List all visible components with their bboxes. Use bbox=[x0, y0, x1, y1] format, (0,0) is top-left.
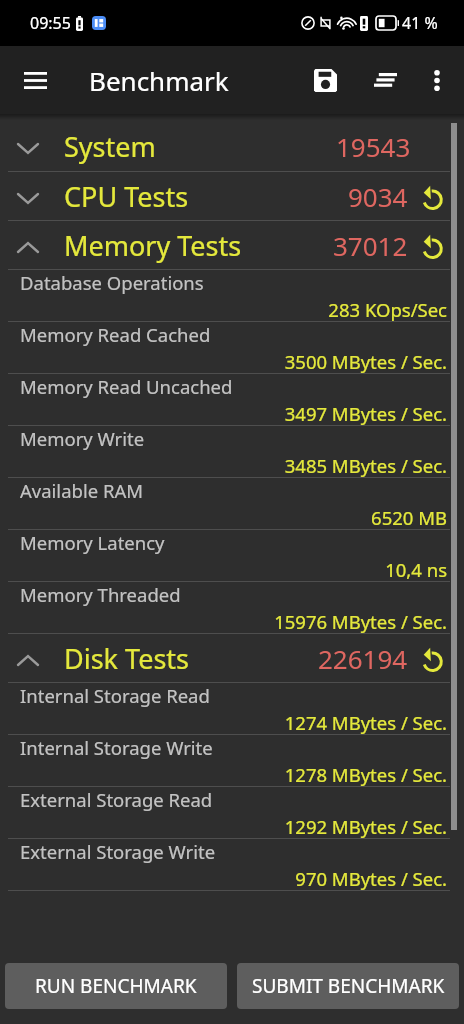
staticText: 1278 MBytes / Sec. bbox=[284, 762, 447, 787]
staticText: 41 % bbox=[402, 12, 438, 34]
button[interactable]: Disk Tests bbox=[0, 634, 464, 682]
button[interactable]: Database Operations bbox=[0, 270, 464, 321]
button[interactable]: Memory Threaded bbox=[0, 582, 464, 633]
staticText: 1274 MBytes / Sec. bbox=[284, 710, 447, 735]
button[interactable]: Rerun Disk Tests bbox=[417, 634, 443, 682]
staticText: Memory Read Uncached bbox=[20, 374, 233, 399]
staticText: 15976 MBytes / Sec. bbox=[274, 609, 447, 634]
staticText: Available RAM bbox=[20, 478, 144, 503]
button[interactable]: Rerun Memory Tests bbox=[417, 221, 443, 269]
button[interactable]: Memory Read Uncached bbox=[0, 374, 464, 425]
button[interactable]: Save bbox=[302, 52, 348, 108]
staticText: 9034 bbox=[348, 179, 408, 214]
staticText: RUN BENCHMARK bbox=[35, 973, 197, 999]
button[interactable]: CPU Tests bbox=[0, 172, 464, 220]
staticText: 3485 MBytes / Sec. bbox=[284, 453, 447, 478]
button[interactable]: Available RAM bbox=[0, 478, 464, 529]
staticText: 6520 MB bbox=[371, 505, 447, 530]
staticText: External Storage Read bbox=[20, 787, 213, 812]
button[interactable]: Sort bbox=[362, 52, 408, 108]
staticText: CPU Tests bbox=[64, 178, 189, 215]
button[interactable]: RUN BENCHMARK bbox=[5, 963, 227, 1009]
staticText: Database Operations bbox=[20, 270, 204, 295]
staticText: 3500 MBytes / Sec. bbox=[284, 349, 447, 374]
button[interactable]: Rerun CPU Tests bbox=[417, 172, 443, 220]
staticText: External Storage Write bbox=[20, 839, 216, 864]
staticText: Disk Tests bbox=[64, 640, 190, 677]
staticText: Internal Storage Write bbox=[20, 735, 213, 760]
staticText: 37012 bbox=[333, 228, 408, 263]
button[interactable]: Internal Storage Read bbox=[0, 683, 464, 734]
staticText: SUBMIT BENCHMARK bbox=[252, 973, 445, 999]
staticText: 19543 bbox=[336, 129, 411, 164]
staticText: Memory Tests bbox=[64, 227, 242, 264]
staticText: 970 MBytes / Sec. bbox=[295, 866, 447, 891]
staticText: 10,4 ns bbox=[385, 557, 447, 582]
staticText: 283 KOps/Sec bbox=[328, 297, 447, 322]
staticText: 1292 MBytes / Sec. bbox=[284, 814, 447, 839]
button[interactable]: Memory Write bbox=[0, 426, 464, 477]
button[interactable]: Memory Tests bbox=[0, 221, 464, 269]
staticText: Memory Write bbox=[20, 426, 145, 451]
button[interactable]: System bbox=[0, 122, 464, 171]
staticText: 226194 bbox=[318, 641, 408, 676]
button[interactable]: Internal Storage Write bbox=[0, 735, 464, 786]
button[interactable]: External Storage Write bbox=[0, 839, 464, 890]
button[interactable]: Memory Read Cached bbox=[0, 322, 464, 373]
button[interactable]: External Storage Read bbox=[0, 787, 464, 838]
staticText: 09:55 bbox=[30, 12, 71, 34]
staticText: Internal Storage Read bbox=[20, 683, 210, 708]
button[interactable]: More options bbox=[414, 52, 460, 108]
button[interactable]: Navigation menu bbox=[12, 57, 58, 103]
staticText: 3497 MBytes / Sec. bbox=[284, 401, 447, 426]
staticText: Memory Read Cached bbox=[20, 322, 211, 347]
staticText: Benchmark bbox=[89, 63, 229, 98]
staticText: Memory Latency bbox=[20, 530, 165, 555]
button[interactable]: SUBMIT BENCHMARK bbox=[237, 963, 459, 1009]
button[interactable]: Memory Latency bbox=[0, 530, 464, 581]
staticText: Memory Threaded bbox=[20, 582, 181, 607]
staticText: System bbox=[64, 128, 156, 165]
